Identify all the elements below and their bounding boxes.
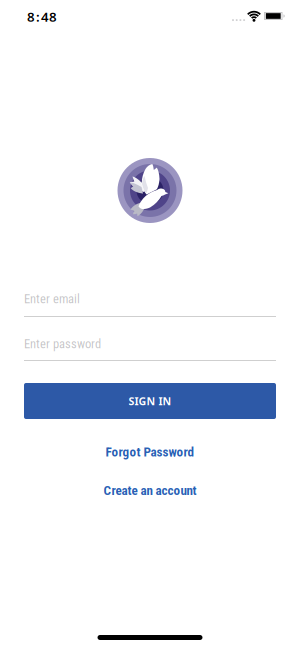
staticText: Create an account bbox=[103, 483, 196, 498]
button[interactable]: SIGN IN bbox=[24, 383, 276, 419]
staticText: Enter email bbox=[24, 292, 80, 306]
staticText: SIGN IN bbox=[128, 394, 171, 408]
button[interactable]: Enter password bbox=[24, 332, 276, 362]
button[interactable]: Enter email bbox=[24, 288, 276, 318]
staticText: 8 : 48 bbox=[27, 8, 57, 25]
staticText: Forgot Password bbox=[105, 444, 194, 460]
staticText: Enter password bbox=[24, 337, 101, 351]
button[interactable]: Create an account bbox=[103, 483, 196, 498]
button[interactable]: Forgot Password bbox=[105, 444, 194, 460]
